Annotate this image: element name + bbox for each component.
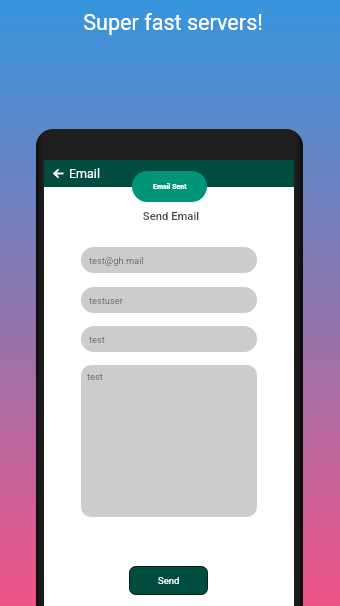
button[interactable]: Back — [50, 165, 67, 182]
staticText: test@gh.mail — [89, 255, 144, 266]
staticText: testuser — [89, 295, 123, 306]
button[interactable]: testuser — [81, 287, 257, 313]
button[interactable]: Email Sent — [132, 171, 207, 202]
staticText: Email — [69, 166, 100, 181]
button[interactable]: test@gh.mail — [81, 247, 257, 273]
button[interactable]: Send — [129, 566, 208, 595]
staticText: test — [89, 334, 105, 345]
staticText: Send Email — [46, 210, 296, 223]
button[interactable]: test — [81, 365, 257, 517]
staticText: Send — [158, 575, 180, 586]
staticText: test — [87, 371, 103, 382]
button[interactable]: test — [81, 326, 257, 352]
staticText: Email Sent — [153, 183, 187, 191]
staticText: Super fast servers! — [3, 10, 340, 35]
